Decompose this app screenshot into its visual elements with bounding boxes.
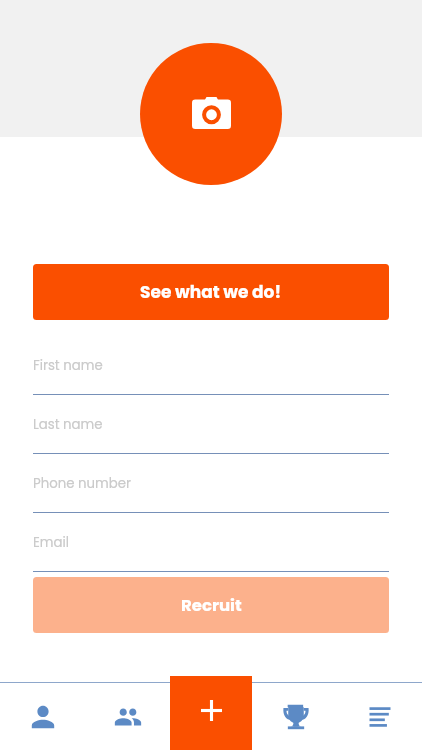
button[interactable]: Teams xyxy=(85,682,170,750)
staticText: First name xyxy=(33,356,103,375)
staticText: Last name xyxy=(33,415,103,434)
button[interactable]: Leaderboard xyxy=(254,682,338,750)
button[interactable]: Profile xyxy=(0,682,85,750)
button[interactable]: Recruit xyxy=(33,577,389,633)
button[interactable]: Email xyxy=(33,527,389,572)
button[interactable]: Phone number xyxy=(33,468,389,513)
staticText: Recruit xyxy=(181,594,242,617)
button[interactable]: See what we do! xyxy=(33,264,389,320)
button[interactable]: Menu xyxy=(338,682,422,750)
staticText: See what we do! xyxy=(140,280,282,304)
button[interactable]: Add profile photo xyxy=(140,43,282,185)
staticText: Email xyxy=(33,533,70,552)
button[interactable]: First name xyxy=(33,350,389,395)
button[interactable]: Add xyxy=(170,676,252,750)
button[interactable]: Last name xyxy=(33,409,389,454)
staticText: Phone number xyxy=(33,474,131,493)
